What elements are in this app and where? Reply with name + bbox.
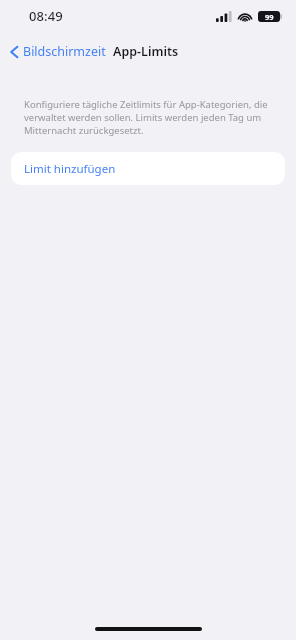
button[interactable]: Limit hinzufügen — [11, 152, 285, 185]
button[interactable]: Bildschirmzeit — [7, 43, 106, 60]
staticText: 99 — [265, 12, 274, 22]
staticText: Konfiguriere tägliche Zeitlimits für App… — [24, 98, 274, 137]
staticText: App-Limits — [113, 43, 179, 60]
staticText: Limit hinzufügen — [24, 161, 116, 177]
staticText: 08:49 — [29, 7, 63, 25]
staticText: Bildschirmzeit — [23, 43, 106, 60]
